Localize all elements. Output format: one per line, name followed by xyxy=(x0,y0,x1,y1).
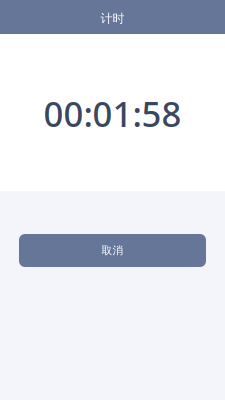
button[interactable]: 取消 xyxy=(19,234,206,267)
staticText: 00:01:58 xyxy=(43,90,181,136)
staticText: 取消 xyxy=(101,244,123,257)
staticText: 计时 xyxy=(100,11,124,26)
